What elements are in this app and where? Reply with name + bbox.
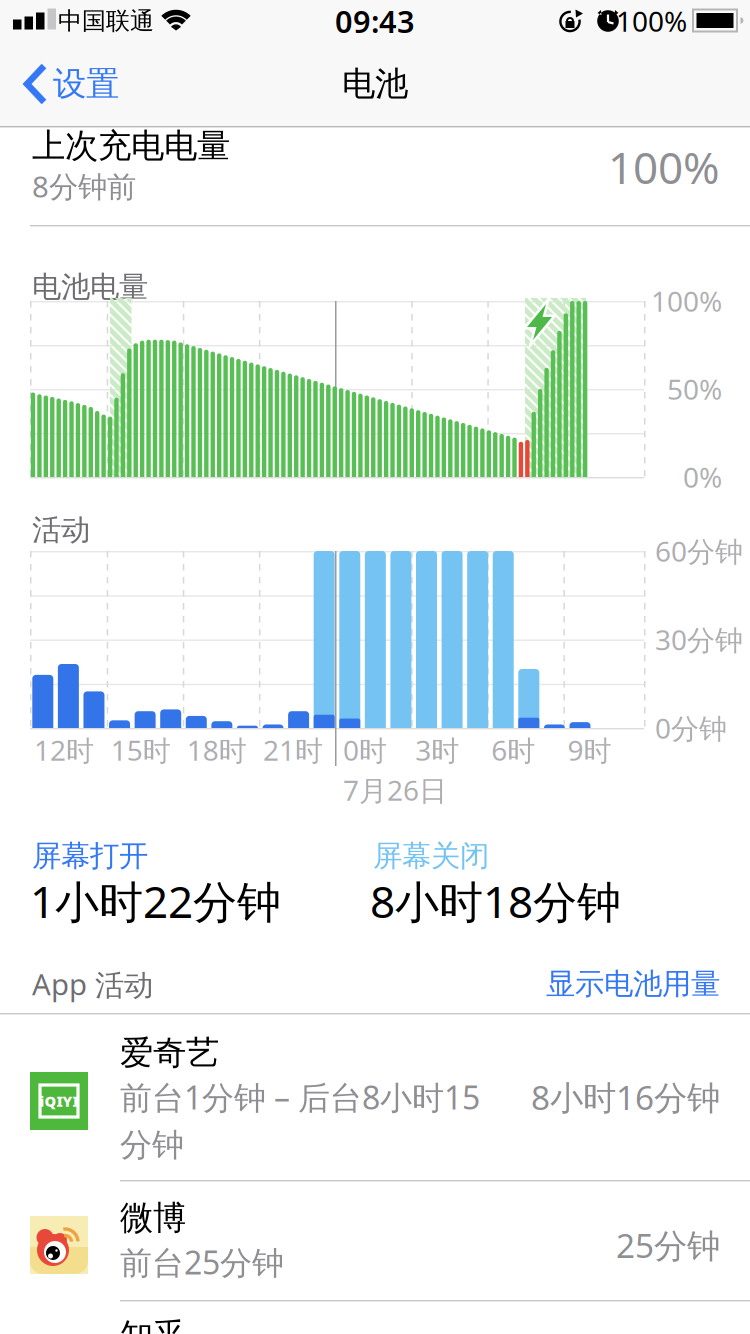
staticText: 设置 bbox=[53, 63, 119, 104]
staticText: 0分钟 bbox=[655, 709, 727, 747]
button[interactable]: iQIYI bbox=[0, 0, 750, 1334]
staticText: 分钟 bbox=[120, 1125, 184, 1165]
staticText: 25分钟 bbox=[616, 1223, 720, 1267]
staticText: 电池 bbox=[342, 63, 408, 104]
staticText: 6时 bbox=[491, 731, 535, 769]
staticText: 前台1分钟 – 后台8小时15 bbox=[120, 1076, 480, 1118]
staticText: 09:43 bbox=[335, 1, 415, 41]
staticText: 屏幕关闭 bbox=[373, 838, 489, 874]
staticText: 18时 bbox=[187, 731, 247, 769]
staticText: 屏幕打开 bbox=[32, 838, 148, 874]
staticText: 1小时22分钟 bbox=[30, 872, 281, 930]
button[interactable]: 显示电池用量 bbox=[0, 0, 750, 1334]
staticText: 微博 bbox=[120, 1197, 186, 1238]
staticText: 60分钟 bbox=[655, 532, 743, 570]
staticText: 前台25分钟 bbox=[120, 1241, 284, 1283]
staticText: iQIYI bbox=[39, 1091, 78, 1111]
staticText: 0% bbox=[683, 458, 722, 496]
staticText: 0时 bbox=[343, 731, 387, 769]
staticText: 100% bbox=[608, 138, 720, 196]
button[interactable]: 设置 bbox=[0, 0, 750, 1334]
staticText: 上次充电电量 bbox=[32, 125, 230, 166]
staticText: 50% bbox=[667, 370, 722, 408]
staticText: 3时 bbox=[415, 731, 459, 769]
staticText: 15时 bbox=[111, 731, 171, 769]
staticText: 电池电量 bbox=[32, 269, 148, 305]
staticText: 8分钟前 bbox=[32, 166, 136, 205]
staticText: 12时 bbox=[34, 731, 94, 769]
staticText: 100% bbox=[651, 282, 722, 320]
staticText: 知乎 bbox=[120, 1315, 186, 1334]
staticText: App 活动 bbox=[32, 964, 153, 1003]
button[interactable]: 知乎 bbox=[0, 0, 750, 1334]
staticText: 8小时16分钟 bbox=[531, 1075, 720, 1119]
staticText: 100% bbox=[616, 2, 687, 40]
staticText: 显示电池用量 bbox=[546, 966, 720, 1002]
staticText: 8小时18分钟 bbox=[370, 872, 621, 930]
staticText: 中国联通 bbox=[58, 6, 154, 36]
staticText: 9时 bbox=[567, 731, 611, 769]
staticText: 21时 bbox=[263, 731, 323, 769]
staticText: 爱奇艺 bbox=[120, 1032, 219, 1073]
staticText: 7月26日 bbox=[343, 771, 447, 809]
button[interactable]: 微博 bbox=[0, 0, 750, 1334]
staticText: 30分钟 bbox=[655, 621, 743, 658]
staticText: 活动 bbox=[32, 512, 90, 548]
